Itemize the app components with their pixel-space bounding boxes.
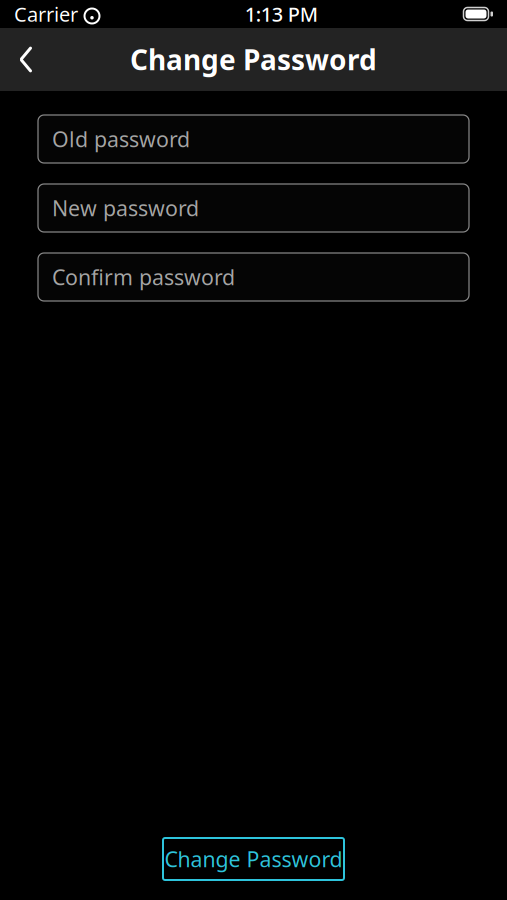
staticText: New password bbox=[52, 194, 199, 222]
staticText: Old password bbox=[52, 125, 190, 153]
staticText: 1:13 PM bbox=[245, 1, 318, 27]
button[interactable]: Change Password bbox=[163, 838, 344, 880]
staticText: Carrier bbox=[14, 1, 78, 27]
button[interactable]: Back bbox=[0, 31, 52, 87]
button[interactable]: Old password bbox=[38, 115, 469, 163]
staticText: Change Password bbox=[130, 41, 377, 78]
staticText: Confirm password bbox=[52, 263, 235, 291]
button[interactable]: New password bbox=[38, 184, 469, 232]
button[interactable]: Confirm password bbox=[38, 253, 469, 301]
staticText: Change Password bbox=[164, 845, 342, 873]
